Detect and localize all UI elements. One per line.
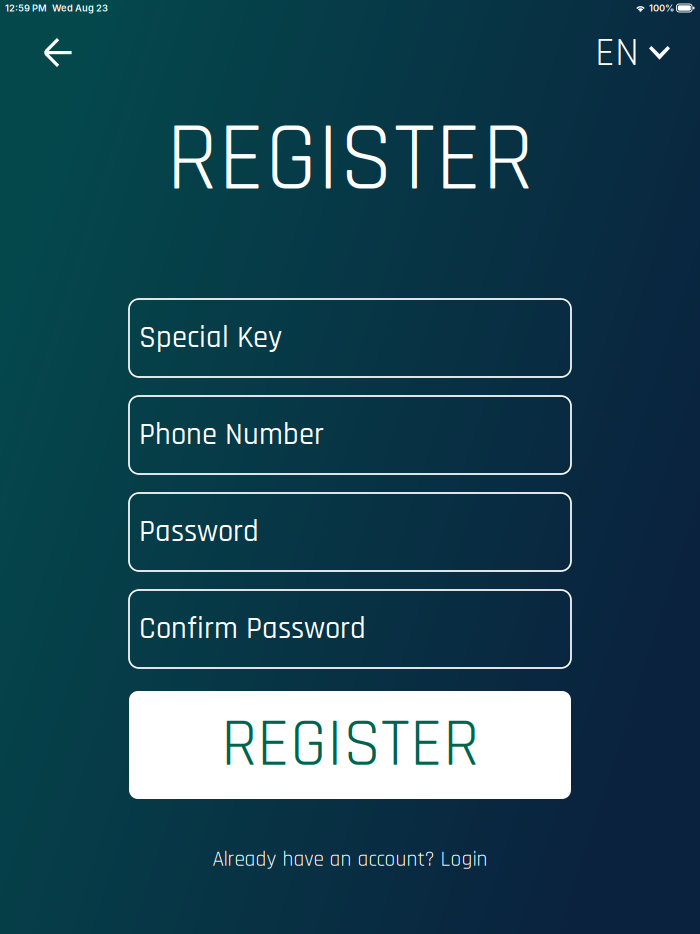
staticText: Special Key [139, 318, 282, 357]
staticText: REGISTER [221, 702, 479, 788]
staticText: Confirm Password [139, 609, 366, 648]
staticText: 12:59 PM [5, 2, 47, 14]
button[interactable]: Phone Number [129, 396, 571, 474]
staticText: Wed Aug 23 [52, 2, 108, 14]
button[interactable]: REGISTER [129, 691, 571, 799]
staticText: Password [139, 512, 259, 551]
staticText: Already have an account? Login [212, 846, 487, 873]
button[interactable]: Special Key [129, 299, 571, 377]
button[interactable]: Confirm Password [129, 590, 571, 668]
button[interactable]: EN [595, 26, 670, 80]
button[interactable]: Password [129, 493, 571, 571]
staticText: EN [595, 27, 639, 79]
staticText: REGISTER [166, 98, 534, 222]
button[interactable]: Back [22, 26, 87, 80]
staticText: Phone Number [139, 415, 324, 454]
staticText: 100% [649, 2, 674, 14]
button[interactable]: Already have an account? Login [212, 846, 487, 873]
